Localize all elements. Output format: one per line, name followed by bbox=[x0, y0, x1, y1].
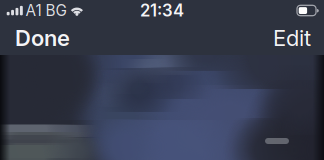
button[interactable]: Done bbox=[0, 17, 85, 59]
staticText: A1 BG bbox=[25, 1, 66, 20]
button[interactable]: Edit bbox=[260, 17, 324, 59]
staticText: 21:34 bbox=[140, 0, 184, 21]
staticText: Done bbox=[15, 25, 70, 51]
staticText: Edit bbox=[273, 25, 311, 51]
